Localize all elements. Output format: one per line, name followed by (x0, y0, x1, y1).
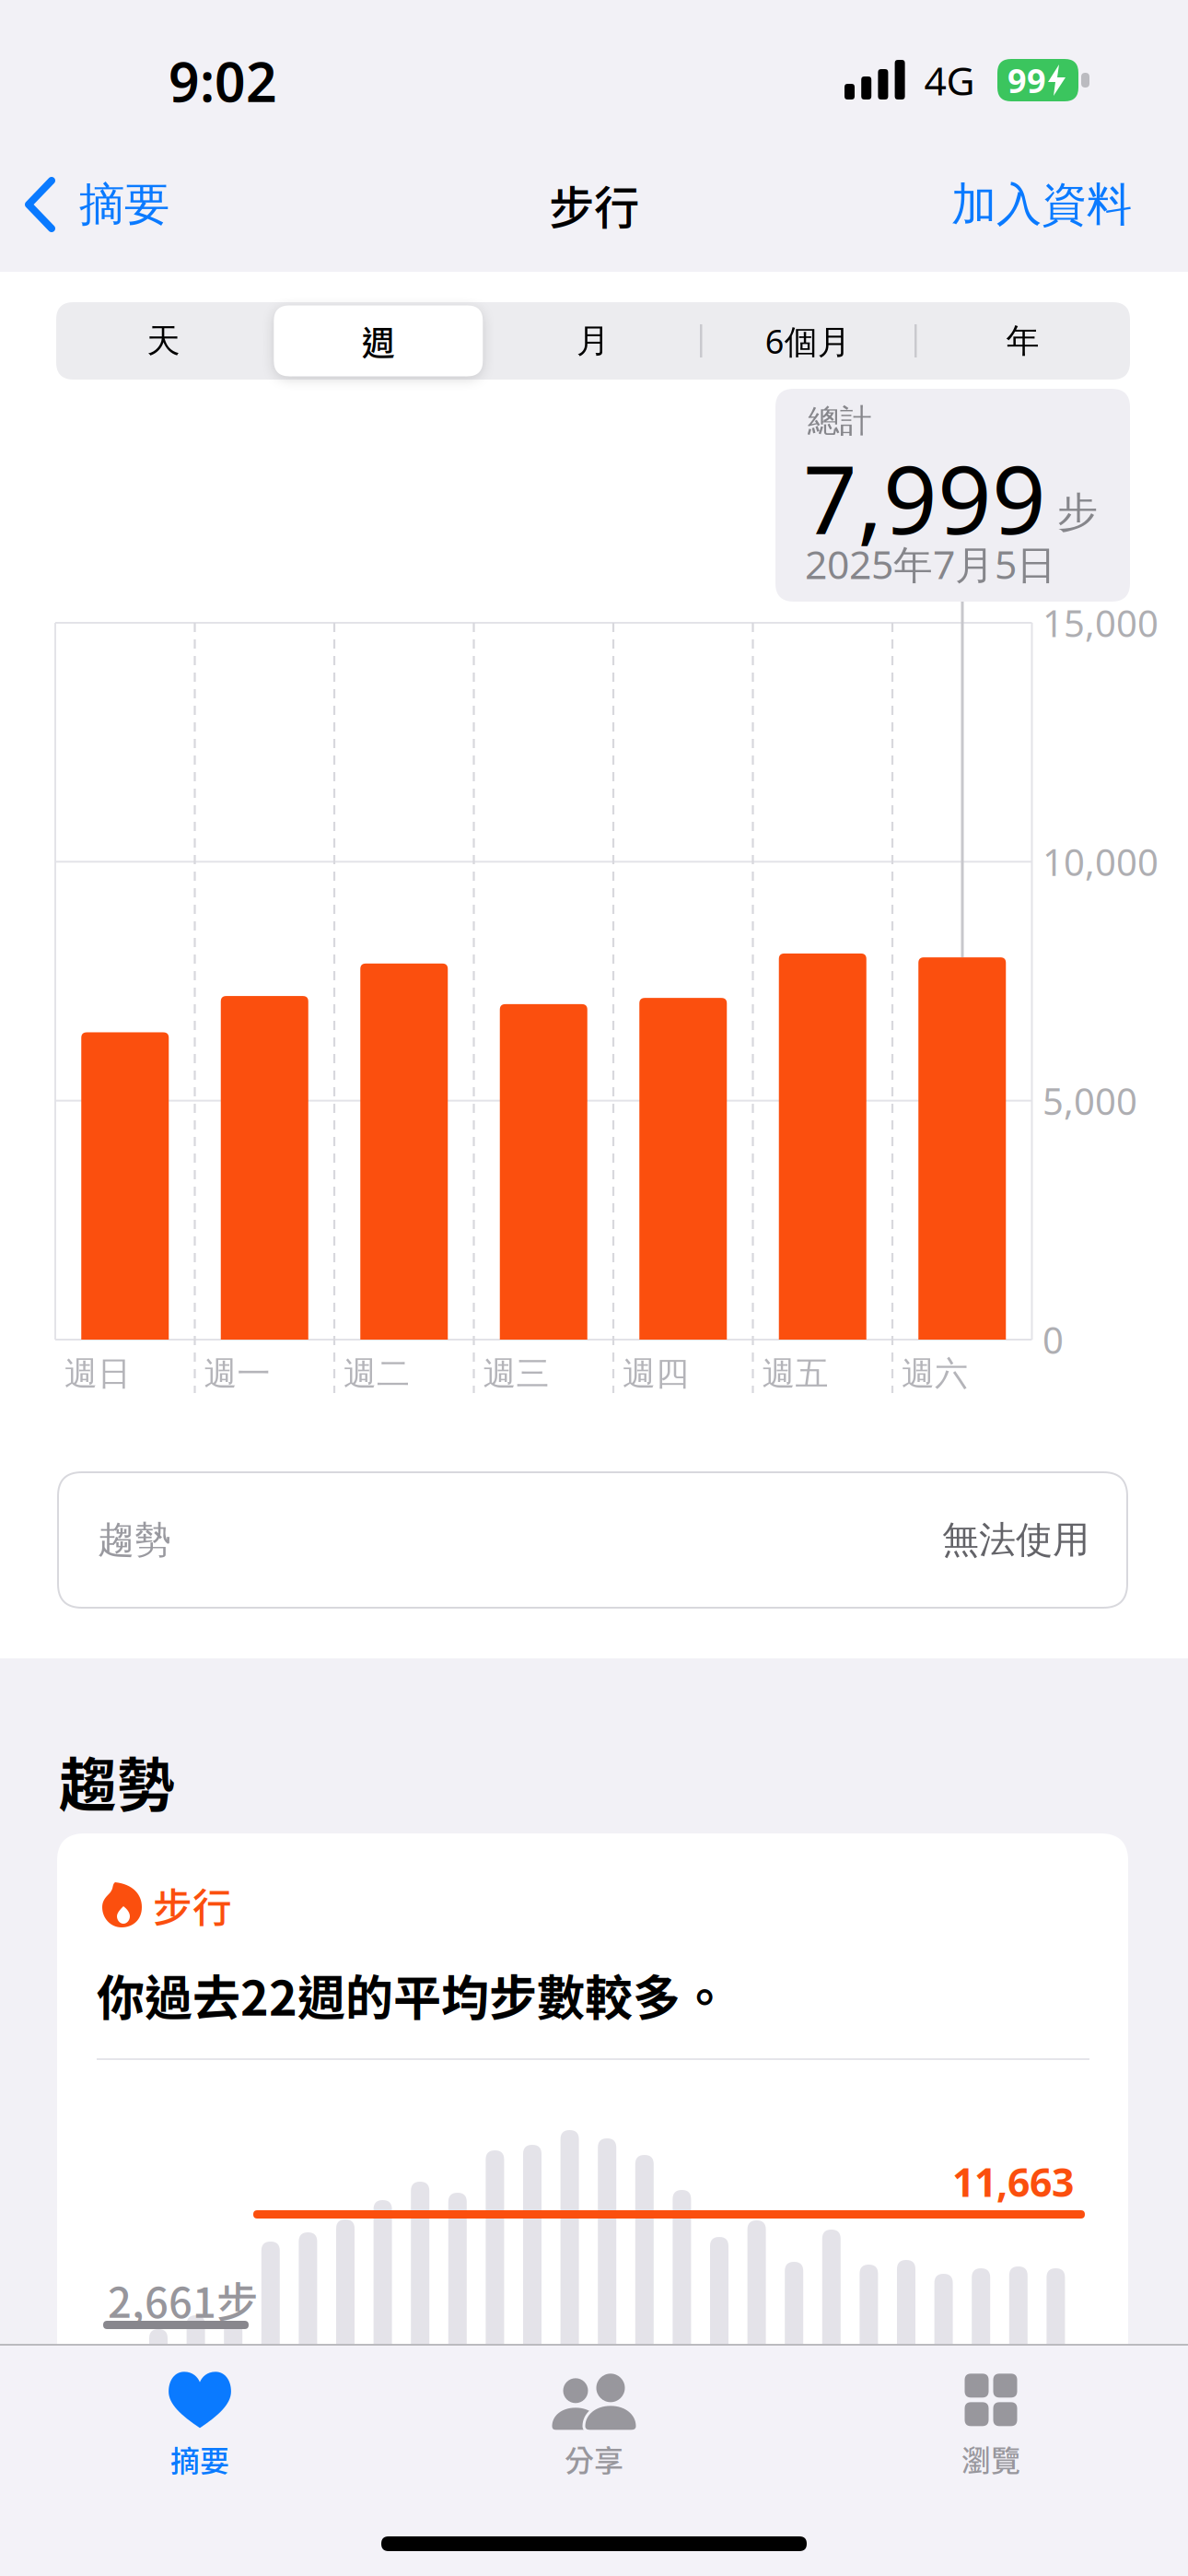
button[interactable]: 年 (915, 302, 1130, 380)
staticText: 週二 (344, 1353, 410, 1394)
staticText: 4G (924, 54, 975, 106)
button[interactable]: 摘要 (52, 2353, 347, 2500)
staticText: 步行 (153, 1877, 232, 1934)
button[interactable]: 天 (56, 302, 271, 380)
staticText: 趨勢 (59, 1739, 175, 1823)
staticText: 99 (1007, 58, 1046, 102)
staticText: 週六 (902, 1353, 968, 1394)
button[interactable]: 6個月 (701, 302, 915, 380)
staticText: 加入資料 (951, 177, 1132, 232)
staticText: 週五 (762, 1353, 828, 1394)
staticText: 15,000 (1042, 598, 1159, 647)
staticText: 2025年7月5日 (805, 538, 1056, 590)
staticText: 11,663 (952, 2156, 1074, 2208)
button[interactable]: 返回摘要 (26, 177, 169, 232)
staticText: 5,000 (1042, 1076, 1137, 1125)
staticText: 週 (362, 317, 395, 365)
staticText: 摘要 (170, 2438, 229, 2480)
staticText: 2,661步 (108, 2269, 258, 2330)
staticText: 月 (577, 321, 610, 361)
staticText: 6個月 (765, 319, 851, 363)
button[interactable]: 月 (486, 302, 700, 380)
staticText: 週日 (64, 1353, 131, 1394)
staticText: 總計 (808, 401, 872, 441)
staticText: 10,000 (1042, 837, 1159, 886)
button[interactable]: 分享 (447, 2353, 741, 2500)
staticText: 無法使用 (942, 1517, 1089, 1563)
staticText: 週三 (483, 1353, 549, 1394)
button[interactable]: 瀏覽 (844, 2353, 1138, 2500)
staticText: 0 (1042, 1315, 1064, 1364)
button[interactable]: 趨勢 (57, 1471, 1128, 1609)
button[interactable] (57, 1833, 1128, 2414)
staticText: 分享 (565, 2437, 623, 2480)
staticText: 你過去22週的平均步數較多。 (97, 1960, 728, 2029)
staticText: 週四 (623, 1353, 689, 1394)
button[interactable]: 週 (271, 302, 486, 380)
button[interactable]: 加入資料 (892, 177, 1132, 232)
staticText: 摘要 (79, 177, 169, 232)
staticText: 步行 (549, 172, 639, 237)
staticText: 趨勢 (98, 1517, 171, 1563)
staticText: 9:02 (169, 45, 277, 117)
staticText: 年 (1006, 321, 1039, 361)
staticText: 步 (1057, 487, 1098, 537)
staticText: 瀏覽 (961, 2437, 1020, 2480)
staticText: 週一 (204, 1353, 270, 1394)
staticText: 天 (147, 321, 180, 361)
staticText: 7,999 (803, 435, 1046, 560)
